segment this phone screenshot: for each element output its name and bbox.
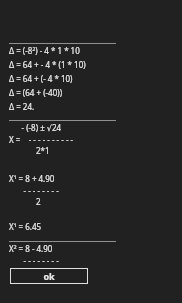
staticText: Δ = 64 + - 4 * (1 * 10)	[9, 59, 86, 70]
staticText: - - - - - - - -	[9, 185, 59, 196]
button[interactable]: ok	[10, 268, 88, 284]
staticText: - (-8) ± √24	[9, 122, 62, 133]
staticText: Δ = 24.	[9, 101, 35, 112]
staticText: Δ = (-8²) - 4 * 1 * 10	[9, 45, 80, 56]
staticText: X² = 8 - 4.90	[9, 243, 53, 254]
staticText: ok	[43, 270, 55, 282]
staticText: - - - - - - - -	[9, 255, 59, 266]
staticText: X¹ = 6.45	[9, 221, 42, 232]
staticText: 2	[9, 196, 41, 207]
staticText: 2*1	[9, 145, 50, 156]
staticText: Δ = 64 + (- 4 * 10)	[9, 73, 73, 84]
staticText: X¹ = 8 + 4.90	[9, 173, 55, 184]
staticText: Δ = (64 + (-40))	[9, 87, 63, 98]
staticText: X = - - - - - - - - - -	[9, 134, 74, 145]
